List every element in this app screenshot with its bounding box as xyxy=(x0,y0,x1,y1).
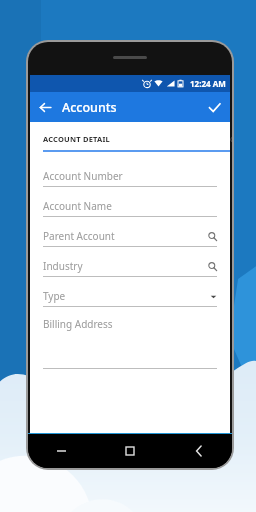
button[interactable]: Back xyxy=(34,96,56,118)
staticText: Parent Account xyxy=(43,229,115,243)
staticText: 12:24 AM xyxy=(190,78,226,89)
button[interactable]: Back xyxy=(188,440,210,462)
button[interactable]: Type xyxy=(43,286,217,307)
button[interactable]: ACCOUNT DETAIL xyxy=(43,134,230,155)
button[interactable]: Recent apps xyxy=(119,440,141,462)
staticText: Account Number xyxy=(43,169,123,183)
button[interactable]: Billing Address xyxy=(43,316,217,369)
button[interactable]: Account Number xyxy=(43,166,217,187)
button[interactable]: Minimize xyxy=(50,440,72,462)
button[interactable]: Industry xyxy=(43,256,217,277)
staticText: Type xyxy=(43,289,66,303)
staticText: ACCOUNT DETAIL xyxy=(43,134,110,144)
staticText: Account Name xyxy=(43,199,112,213)
button[interactable]: Account Name xyxy=(43,196,217,217)
button[interactable]: Save xyxy=(203,96,225,118)
staticText: Industry xyxy=(43,259,83,273)
staticText: Accounts xyxy=(62,99,117,116)
button[interactable]: Parent Account xyxy=(43,226,217,247)
staticText: Billing Address xyxy=(43,317,113,331)
